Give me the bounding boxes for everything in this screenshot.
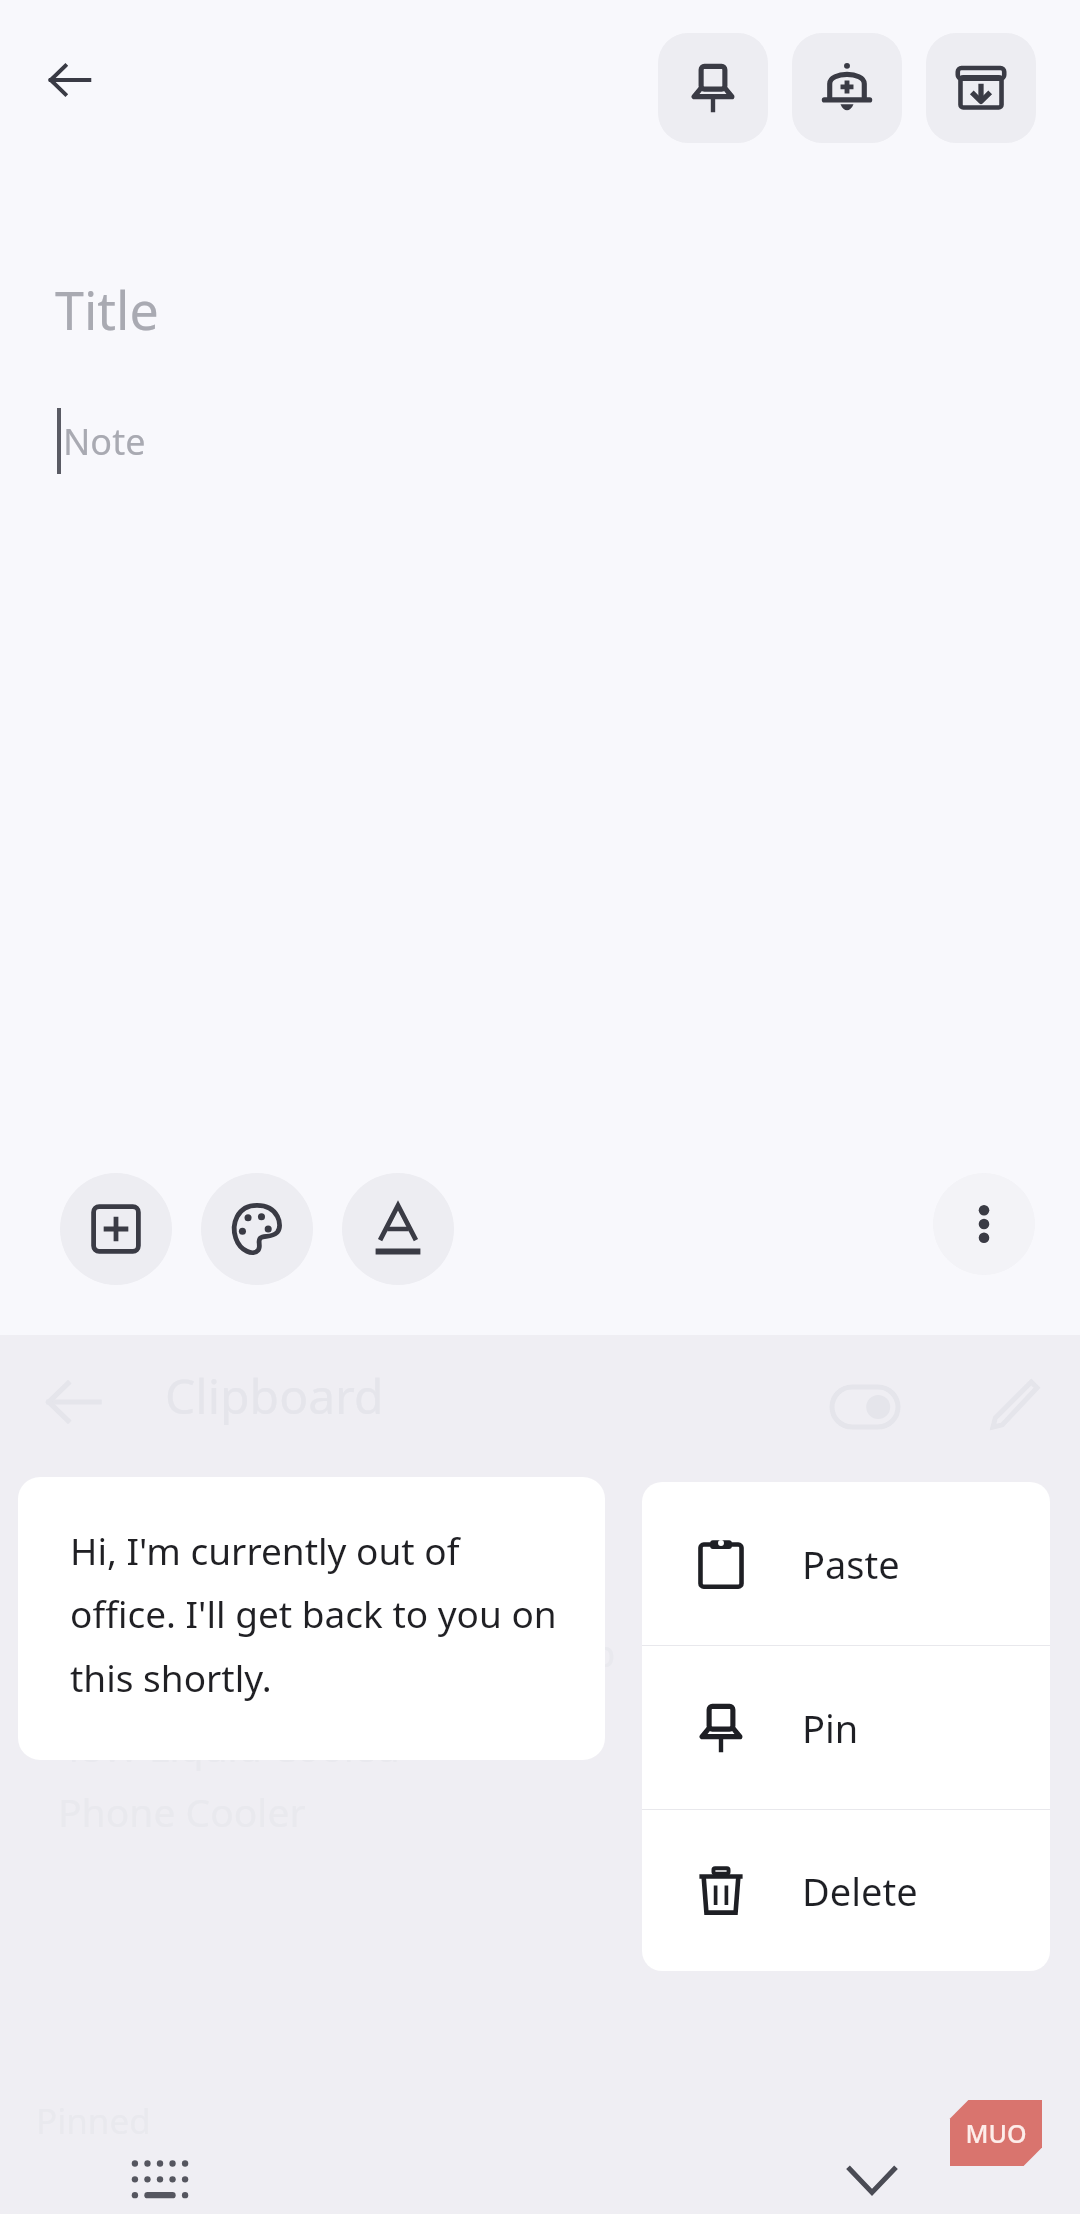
button[interactable]: Text format: [342, 1173, 454, 1285]
button[interactable]: Paste: [642, 1482, 1050, 1645]
staticText: Clipboard: [165, 1363, 384, 1428]
button[interactable]: Add attachment: [60, 1173, 172, 1285]
button[interactable]: Archive: [926, 33, 1036, 143]
staticText: ea: [536, 1574, 578, 1624]
button[interactable]: Add reminder: [792, 33, 902, 143]
button[interactable]: Hide keyboard: [834, 2142, 910, 2214]
staticText: Title: [55, 274, 159, 345]
button[interactable]: Back: [36, 46, 104, 114]
staticText: Delete: [802, 1865, 918, 1917]
staticText: MUO: [965, 2116, 1027, 2150]
button[interactable]: More options: [933, 1173, 1035, 1275]
button[interactable]: Change color: [201, 1173, 313, 1285]
staticText: Pin: [802, 1702, 859, 1754]
staticText: Paste: [802, 1538, 900, 1590]
button[interactable]: Hi, I'm currently out of office. I'll ge…: [18, 1477, 605, 1760]
button[interactable]: Delete: [642, 1810, 1050, 1971]
staticText: Note: [63, 417, 146, 466]
staticText: op: [570, 1627, 616, 1677]
button[interactable]: Pin note: [658, 33, 768, 143]
button[interactable]: Pin: [642, 1646, 1050, 1809]
staticText: 48W Liquid Cooled: [58, 1720, 400, 1773]
button[interactable]: Keyboard: [122, 2142, 198, 2214]
staticText: Hi, I'm currently out of office. I'll ge…: [70, 1525, 571, 1703]
